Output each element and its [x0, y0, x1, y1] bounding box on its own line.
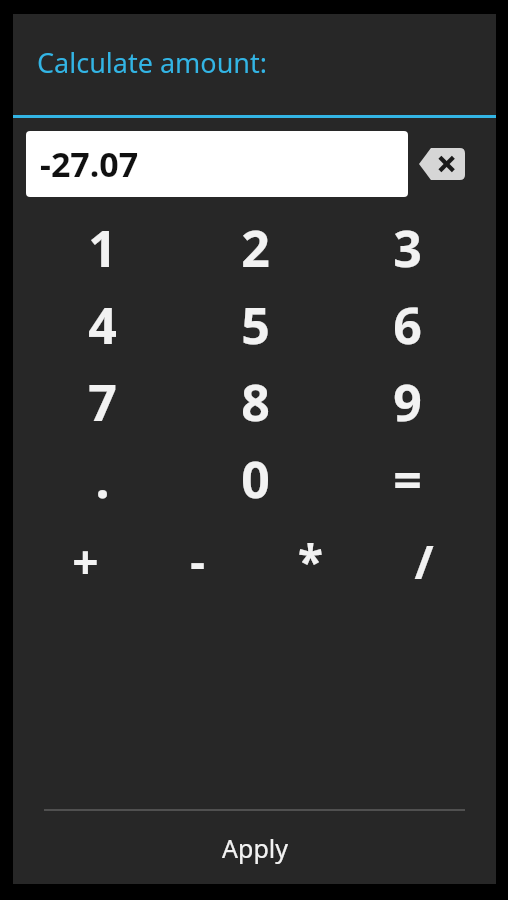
button[interactable]: 1 [26, 209, 179, 286]
button[interactable]: = [331, 440, 483, 517]
staticText: 0 [241, 445, 270, 513]
button[interactable]: 0 [179, 440, 331, 517]
staticText: . [95, 445, 110, 513]
button[interactable]: 9 [331, 363, 483, 440]
button[interactable]: 4 [26, 286, 179, 363]
staticText: -27.07 [40, 141, 139, 187]
button[interactable]: Backspace [416, 134, 468, 194]
button[interactable]: * [254, 517, 367, 605]
staticText: Calculate amount: [37, 44, 268, 81]
staticText: 1 [88, 214, 117, 282]
staticText: 4 [88, 291, 117, 359]
staticText: 7 [88, 368, 117, 436]
button[interactable]: 2 [179, 209, 331, 286]
button[interactable]: 5 [179, 286, 331, 363]
staticText: 8 [241, 368, 270, 436]
button[interactable]: 8 [179, 363, 331, 440]
button[interactable]: 6 [331, 286, 483, 363]
staticText: - [190, 530, 205, 593]
button[interactable]: / [367, 517, 480, 605]
staticText: = [393, 445, 422, 513]
staticText: 5 [241, 291, 270, 359]
staticText: / [414, 530, 434, 593]
button[interactable]: + [29, 517, 141, 605]
staticText: 2 [241, 214, 270, 282]
staticText: Apply [222, 831, 288, 865]
staticText: 3 [393, 214, 422, 282]
staticText: 6 [393, 291, 422, 359]
staticText: * [298, 530, 323, 593]
button[interactable]: 3 [331, 209, 483, 286]
button[interactable]: Apply [13, 811, 496, 884]
button[interactable]: - [141, 517, 254, 605]
button[interactable]: . [26, 440, 179, 517]
staticText: 9 [393, 368, 422, 436]
button[interactable]: 7 [26, 363, 179, 440]
staticText: + [72, 530, 99, 593]
button[interactable]: -27.07 [26, 131, 408, 197]
